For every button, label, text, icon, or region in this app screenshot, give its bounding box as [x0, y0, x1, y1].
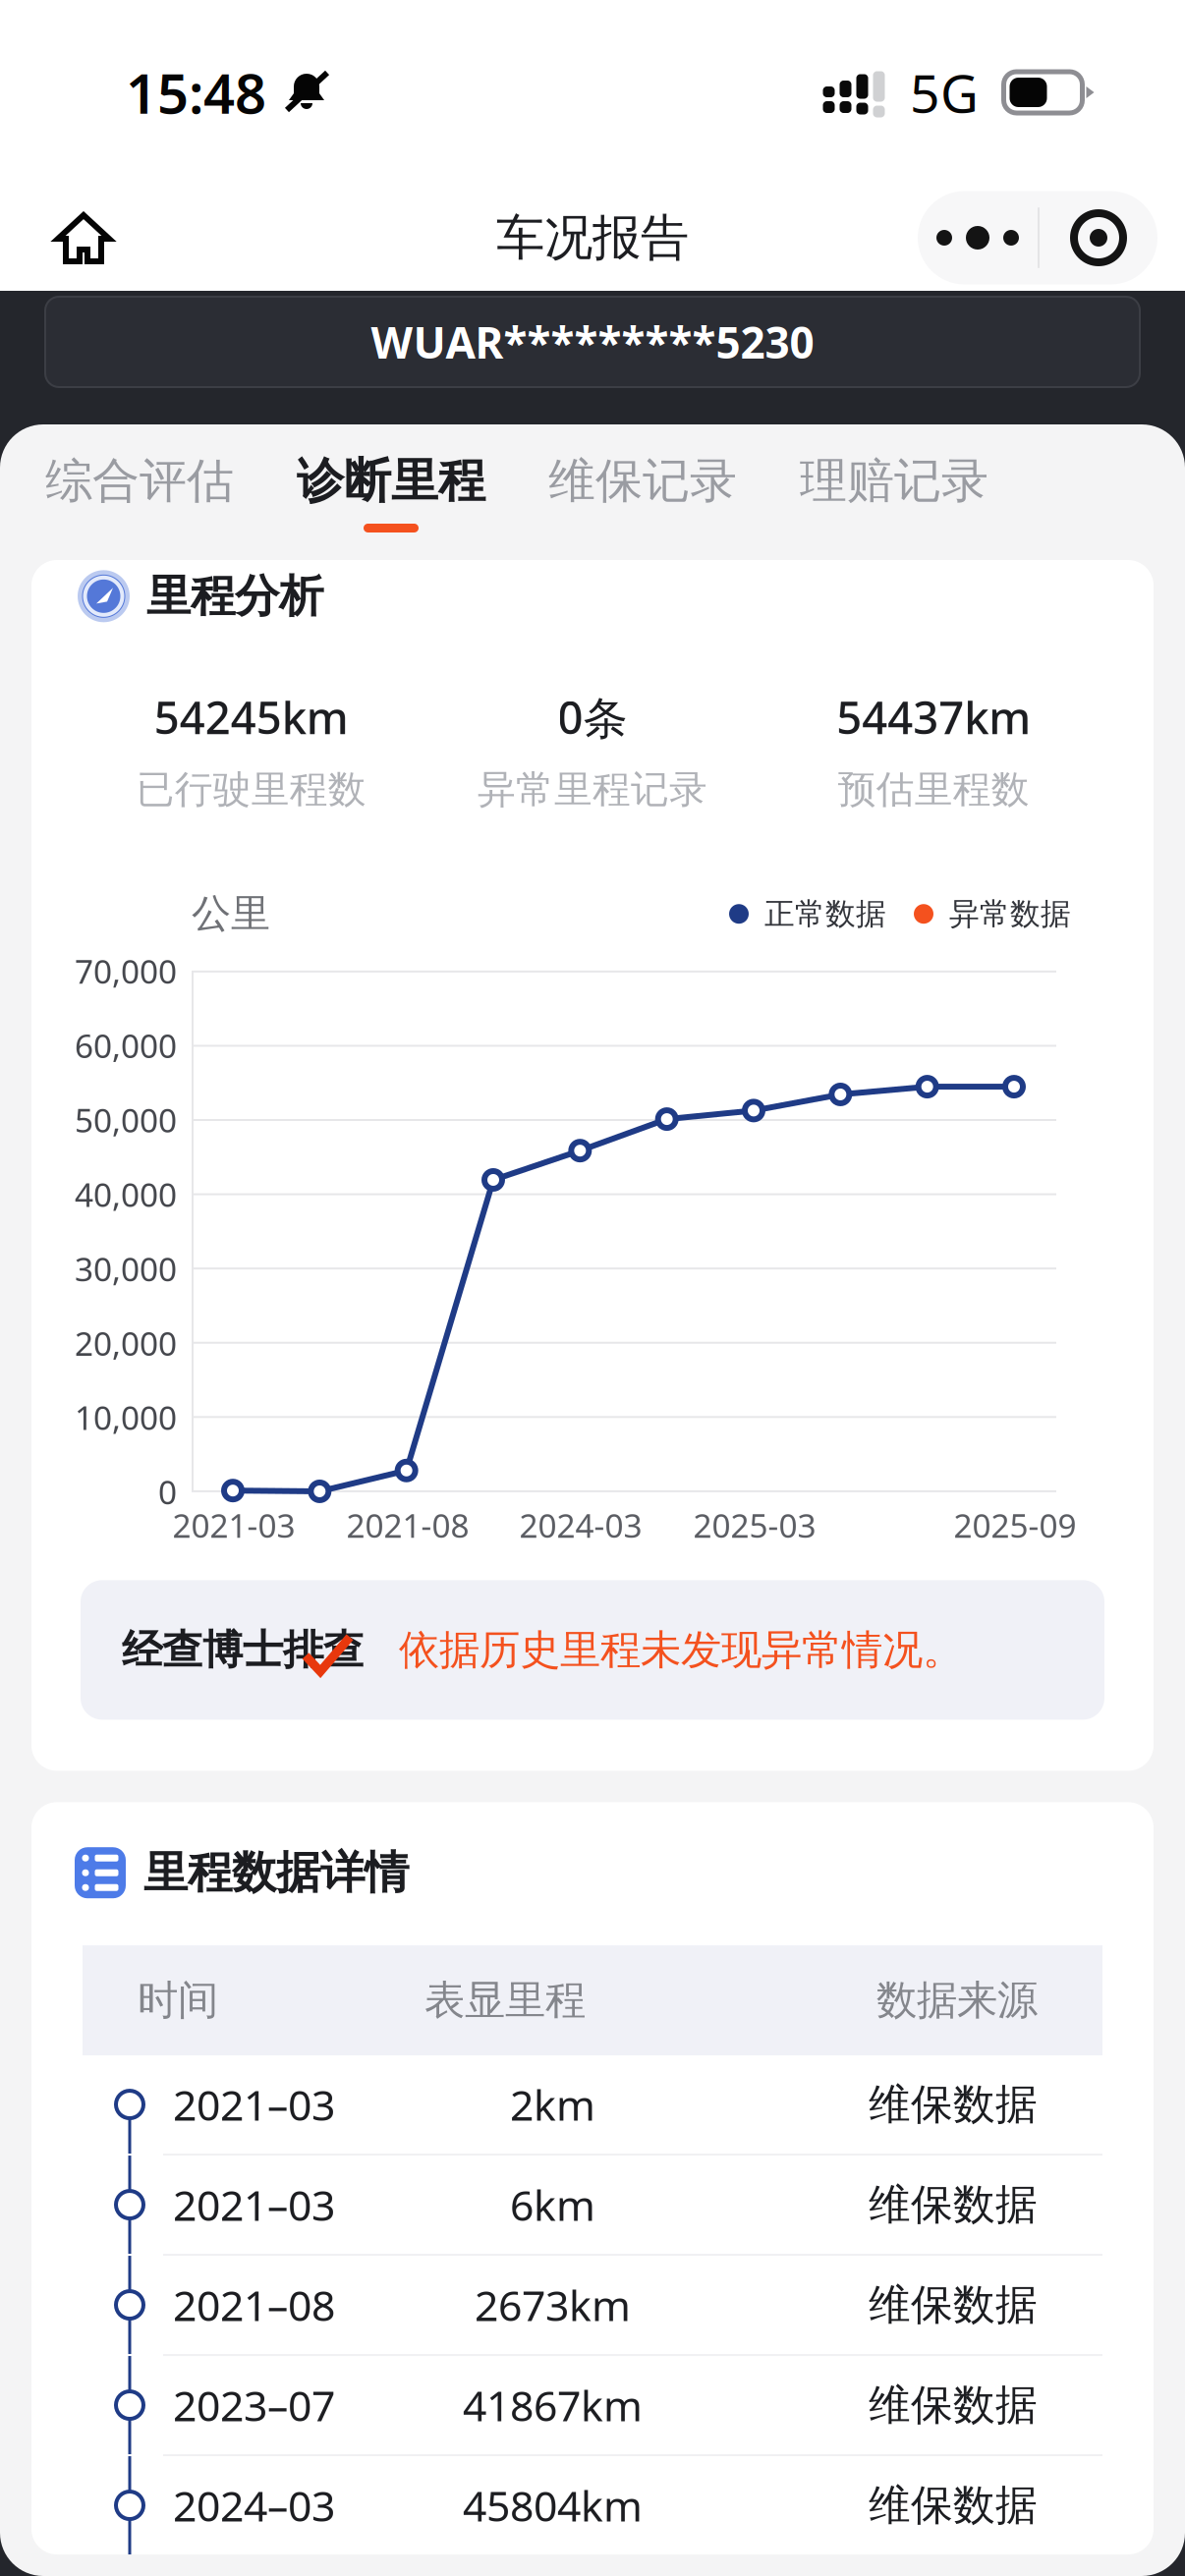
staticText: 时间: [138, 1975, 218, 2025]
button[interactable]: Close mini program: [1040, 191, 1157, 284]
button[interactable]: 理赔记录: [800, 424, 988, 560]
staticText: 已行驶里程数: [136, 766, 366, 813]
staticText: 维保数据: [869, 2379, 1038, 2431]
staticText: 5G: [910, 58, 979, 127]
staticText: 10,000: [75, 1396, 177, 1439]
staticText: 诊断里程: [297, 452, 485, 510]
staticText: 公里: [192, 890, 270, 938]
staticText: 表显里程: [424, 1975, 586, 2025]
staticText: 41867km: [463, 2377, 643, 2433]
staticText: 20,000: [75, 1321, 177, 1365]
staticText: 2km: [510, 2077, 595, 2132]
staticText: 2025-03: [693, 1503, 816, 1547]
staticText: 2021-03: [172, 1503, 295, 1547]
staticText: 0: [158, 1470, 177, 1513]
staticText: 维保数据: [869, 2079, 1038, 2130]
staticText: 经查博士排查: [122, 1625, 364, 1675]
button[interactable]: Home: [43, 198, 124, 277]
button[interactable]: 综合评估: [45, 424, 234, 560]
button[interactable]: 诊断里程: [297, 424, 485, 560]
staticText: 30,000: [75, 1247, 177, 1290]
staticText: 15:48: [126, 56, 266, 129]
button[interactable]: More options: [918, 191, 1038, 284]
staticText: 综合评估: [45, 452, 234, 510]
staticText: 里程数据详情: [143, 1845, 409, 1900]
staticText: 异常里程记录: [478, 766, 707, 813]
staticText: 0条: [558, 687, 627, 747]
staticText: 45804km: [463, 2477, 643, 2533]
staticText: 维保数据: [869, 2179, 1038, 2230]
staticText: 2021–03: [173, 2177, 335, 2233]
staticText: 2021-08: [346, 1503, 469, 1547]
staticText: 54437km: [836, 687, 1031, 747]
staticText: 2024–03: [173, 2477, 335, 2533]
staticText: 异常数据: [949, 895, 1071, 932]
staticText: 正常数据: [764, 895, 886, 932]
staticText: 40,000: [75, 1172, 177, 1216]
staticText: 理赔记录: [800, 452, 988, 510]
staticText: 维保数据: [869, 2279, 1038, 2331]
staticText: 2021–08: [173, 2277, 335, 2333]
staticText: 2021–03: [173, 2077, 335, 2132]
staticText: 50,000: [75, 1098, 177, 1142]
staticText: 依据历史里程未发现异常情况。: [399, 1625, 963, 1675]
staticText: 里程分析: [146, 569, 323, 624]
staticText: 2673km: [475, 2277, 631, 2333]
button[interactable]: 维保记录: [548, 424, 737, 560]
staticText: 维保数据: [869, 2480, 1038, 2531]
staticText: 60,000: [75, 1024, 177, 1067]
staticText: 2024-03: [519, 1503, 642, 1547]
staticText: 维保记录: [548, 452, 737, 510]
staticText: 6km: [510, 2177, 595, 2233]
staticText: 70,000: [75, 949, 177, 993]
staticText: 车况报告: [496, 208, 689, 268]
staticText: WUAR*********5230: [371, 313, 814, 371]
staticText: 2025-09: [954, 1503, 1076, 1547]
staticText: 2023–07: [173, 2377, 335, 2433]
staticText: 54245km: [154, 687, 349, 747]
staticText: 预估里程数: [838, 766, 1030, 813]
staticText: 数据来源: [876, 1975, 1038, 2025]
